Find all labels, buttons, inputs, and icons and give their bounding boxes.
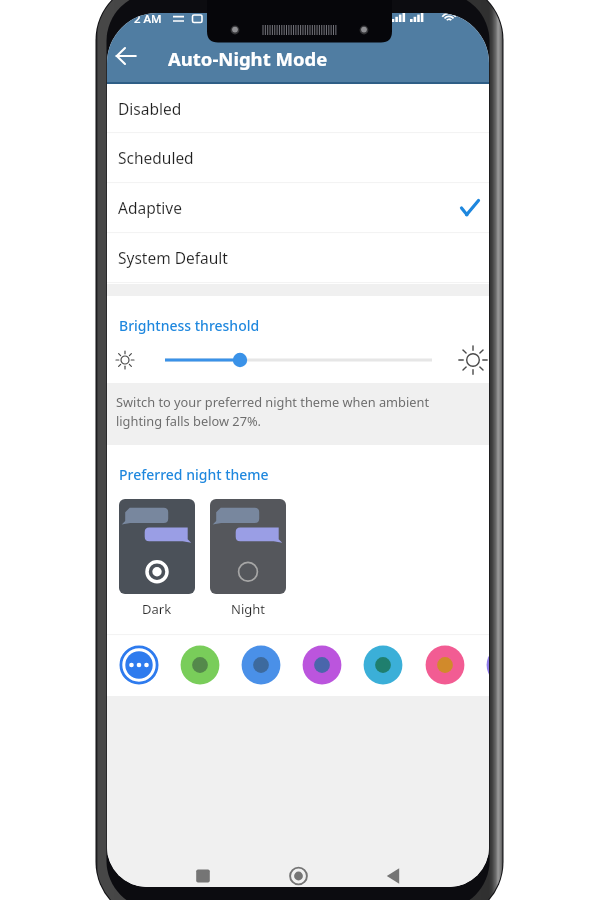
button[interactable] [210,499,286,594]
button[interactable]: Colour option 1 [115,641,163,689]
button[interactable]: Colour option 7 [482,641,489,689]
button[interactable]: Colour option 5 [359,641,407,689]
button[interactable]: Colour option 4 [298,641,346,689]
button[interactable]: Colour option 2 [176,641,224,689]
staticText: Scheduled [118,147,194,168]
button[interactable]: Back [107,37,144,74]
button[interactable]: Disabled [107,84,489,133]
button[interactable]: Colour option 3 [237,641,285,689]
staticText: System Default [118,247,228,268]
staticText: Disabled [118,98,182,119]
button[interactable] [119,499,195,594]
button[interactable]: System Default [107,233,489,282]
staticText: 2 AM [134,13,162,27]
staticText: Night [231,600,265,618]
staticText: Brightness threshold [119,316,260,335]
button[interactable]: Adaptive [107,183,489,232]
staticText: Dark [142,600,172,618]
staticText: Adaptive [118,197,182,218]
button[interactable]: Colour option 6 [421,641,469,689]
button[interactable]: Scheduled [107,133,489,182]
staticText: Preferred night theme [119,465,269,484]
staticText: Switch to your preferred night theme whe… [116,393,454,430]
staticText: Auto-Night Mode [168,46,328,71]
